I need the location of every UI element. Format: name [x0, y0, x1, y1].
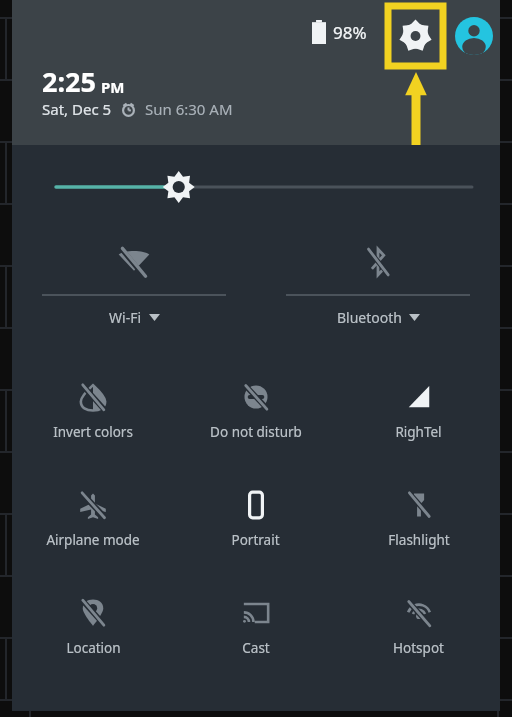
staticText: Location	[66, 639, 121, 657]
button[interactable]: Settings	[388, 6, 443, 66]
button[interactable]: Brightness	[12, 167, 500, 207]
button[interactable]: Hotspot	[337, 591, 500, 657]
button[interactable]: User profile	[455, 17, 493, 55]
staticText: Bluetooth	[337, 308, 402, 327]
staticText: Wi-Fi	[109, 308, 142, 327]
button[interactable]: RighTel	[337, 375, 500, 441]
staticText: Do not disturb	[210, 423, 302, 441]
button[interactable]: Do not disturb	[174, 375, 337, 441]
button[interactable]: Location	[12, 591, 174, 657]
staticText: RighTel	[395, 423, 442, 441]
staticText: Invert colors	[53, 423, 133, 441]
staticText: Hotspot	[393, 639, 444, 657]
staticText: PM	[101, 77, 125, 97]
staticText: Cast	[242, 639, 270, 657]
staticText: Portrait	[231, 531, 280, 549]
staticText: Flashlight	[388, 531, 450, 549]
staticText: 98%	[333, 21, 367, 44]
staticText: 2:25	[42, 63, 96, 100]
button[interactable]: Flashlight	[337, 483, 500, 549]
button[interactable]: Cast	[174, 591, 337, 657]
button[interactable]: Bluetooth	[256, 233, 500, 327]
staticText: Airplane mode	[46, 531, 140, 549]
button[interactable]: Portrait	[174, 483, 337, 549]
button[interactable]: Airplane mode	[12, 483, 174, 549]
button[interactable]: Invert colors	[12, 375, 174, 441]
staticText: Sun 6:30 AM	[145, 99, 233, 119]
staticText: Sat, Dec 5	[42, 99, 112, 119]
button[interactable]: Wi-Fi	[12, 233, 256, 327]
